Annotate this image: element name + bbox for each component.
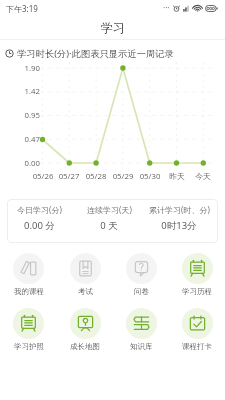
staticText: 知识库: [130, 342, 153, 351]
button[interactable]: 我的课程: [0, 253, 57, 296]
staticText: 1.42: [4, 86, 40, 97]
staticText: 05/26: [29, 171, 57, 182]
staticText: 学习历程: [182, 287, 212, 296]
button[interactable]: 课程打卡: [169, 308, 225, 351]
staticText: 05/27: [55, 171, 83, 182]
staticText: 0时13分: [161, 219, 197, 232]
staticText: 05/29: [109, 171, 137, 182]
staticText: 学习: [101, 20, 125, 35]
staticText: 学习时长(分)·此图表只显示近一周记录: [17, 47, 174, 60]
button[interactable]: 考试: [57, 253, 113, 296]
button[interactable]: 学习历程: [169, 253, 225, 296]
staticText: 0.00 分: [24, 219, 55, 232]
staticText: 累计学习(时、分): [149, 204, 210, 215]
button[interactable]: 问卷: [113, 253, 169, 296]
staticText: 1.90: [4, 63, 40, 74]
staticText: 今日学习(分): [17, 204, 62, 215]
staticText: 连续学习(天): [87, 204, 132, 215]
staticText: 考试: [78, 287, 93, 296]
button[interactable]: 成长地图: [57, 308, 113, 351]
staticText: 05/28: [82, 171, 110, 182]
button[interactable]: 学习护照: [0, 308, 57, 351]
staticText: 问卷: [134, 287, 149, 296]
staticText: 05/30: [136, 171, 164, 182]
staticText: 课程打卡: [182, 342, 212, 351]
staticText: 0.00: [4, 158, 40, 169]
staticText: 成长地图: [70, 342, 100, 351]
staticText: 今天: [189, 171, 217, 181]
staticText: 0.95: [4, 110, 40, 121]
staticText: 昨天: [163, 171, 191, 181]
staticText: 下午3:19: [6, 3, 38, 14]
staticText: ···: [163, 2, 170, 13]
staticText: 我的课程: [14, 287, 44, 296]
staticText: 0.47: [4, 134, 40, 145]
button[interactable]: 知识库: [113, 308, 169, 351]
staticText: 0 天: [100, 219, 118, 232]
staticText: 学习护照: [14, 342, 44, 351]
